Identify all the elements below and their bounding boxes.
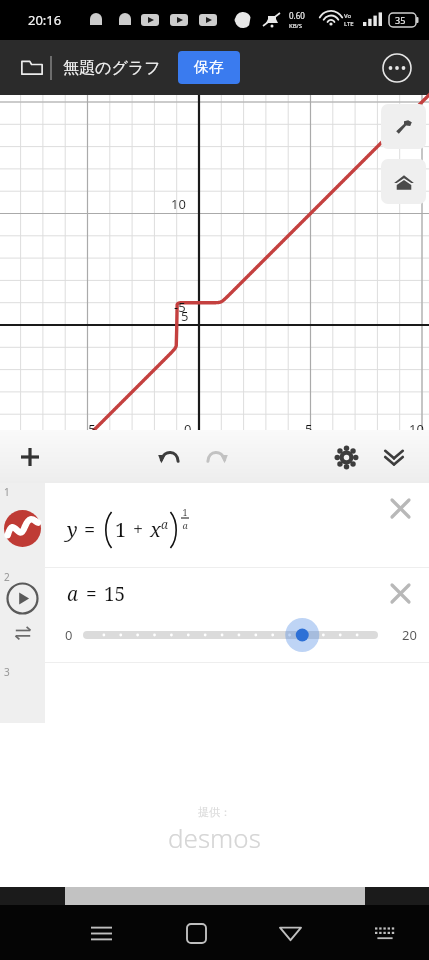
staticText: =	[86, 581, 97, 607]
button[interactable]: Graph settings	[381, 104, 426, 149]
staticText: 20:16	[28, 11, 62, 29]
button[interactable]: Delete expression	[383, 576, 417, 610]
staticText: LTE	[344, 20, 354, 28]
staticText: 5	[305, 420, 313, 438]
button[interactable]: Open folder	[12, 48, 52, 88]
staticText: 0	[65, 626, 73, 644]
staticText: 1	[182, 506, 188, 518]
staticText: Vo	[344, 12, 352, 20]
staticText: x	[150, 516, 161, 543]
button[interactable]: Play animation	[6, 582, 39, 615]
button[interactable]: More options	[377, 48, 417, 88]
button[interactable]: Hide keyboard	[363, 911, 407, 955]
staticText: a	[182, 519, 188, 531]
button[interactable]: Back	[268, 911, 312, 955]
staticText: 1	[4, 485, 10, 499]
staticText: 15	[104, 581, 126, 607]
staticText: 3	[4, 665, 10, 679]
staticText: y	[67, 516, 78, 543]
staticText: a	[161, 516, 168, 532]
staticText: +	[133, 517, 144, 542]
staticText: desmos	[168, 820, 261, 855]
staticText: 5	[181, 307, 189, 325]
button[interactable]: Collapse keypad	[373, 436, 415, 478]
button[interactable]: Delete expression	[383, 491, 417, 525]
button[interactable]: Home	[174, 911, 218, 955]
staticText: 20	[402, 626, 417, 644]
staticText: KB/S	[289, 22, 303, 30]
staticText: 35	[395, 14, 406, 26]
button[interactable]: Toggle graph visibility	[4, 510, 41, 547]
button[interactable]: Add expression	[9, 436, 51, 478]
button[interactable]: Undo	[148, 436, 190, 478]
staticText: 10	[171, 195, 186, 213]
staticText: 10	[409, 420, 424, 438]
staticText: 提供：	[198, 805, 231, 819]
button[interactable]: Redo	[196, 436, 238, 478]
staticText: 0	[184, 420, 192, 438]
button[interactable]: Change animation direction	[10, 620, 36, 646]
staticText: a	[67, 581, 79, 607]
button[interactable]: Home view	[381, 159, 426, 204]
button[interactable]: Slider for a	[45, 616, 429, 654]
button[interactable]: Recent apps	[79, 911, 123, 955]
staticText: 2	[4, 570, 10, 584]
staticText: =	[84, 516, 96, 543]
staticText: 保存	[194, 58, 224, 77]
staticText: 1	[115, 516, 127, 543]
staticText: 0.60	[289, 10, 305, 21]
staticText: -5	[84, 420, 96, 438]
button[interactable]: 保存	[178, 51, 240, 84]
button[interactable]: Settings	[325, 436, 367, 478]
staticText: 無題のグラフ	[63, 58, 161, 78]
staticText: -5	[174, 298, 186, 316]
